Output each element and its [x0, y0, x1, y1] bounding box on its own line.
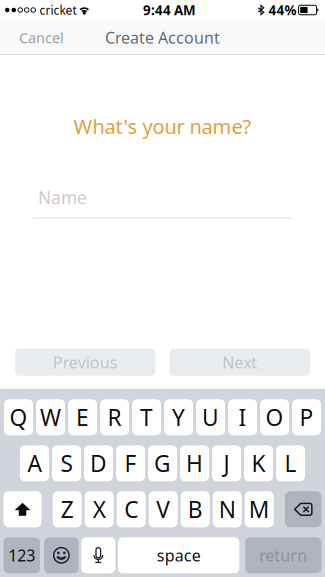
staticText: space — [157, 545, 201, 566]
staticText: A — [27, 448, 41, 478]
button[interactable]: D — [84, 445, 113, 481]
button[interactable]: E — [68, 399, 97, 435]
staticText: M — [249, 494, 270, 524]
staticText: W — [40, 402, 61, 432]
button[interactable]: W — [36, 399, 65, 435]
staticText: cricket — [39, 2, 76, 18]
button[interactable]: T — [132, 399, 161, 435]
button[interactable]: space — [118, 537, 239, 573]
button[interactable]: return — [245, 537, 321, 573]
staticText: 123 — [8, 545, 35, 566]
button[interactable]: Dictate — [81, 537, 115, 573]
button[interactable]: M — [245, 491, 274, 527]
button[interactable]: A — [20, 445, 49, 481]
button[interactable]: V — [149, 491, 178, 527]
staticText: U — [202, 402, 219, 432]
button[interactable]: Shift — [3, 491, 41, 527]
button[interactable]: P — [292, 399, 321, 435]
staticText: T — [140, 402, 153, 432]
button[interactable]: Z — [53, 491, 82, 527]
button[interactable]: X — [85, 491, 114, 527]
staticText: Previous — [53, 352, 118, 373]
button[interactable]: 123 — [3, 537, 40, 573]
staticText: X — [93, 494, 106, 524]
staticText: S — [60, 448, 72, 478]
button[interactable]: L — [276, 445, 305, 481]
button[interactable]: Emoji — [44, 537, 79, 573]
button[interactable]: U — [196, 399, 225, 435]
button[interactable]: K — [244, 445, 273, 481]
staticText: Z — [61, 494, 74, 524]
staticText: J — [223, 448, 229, 478]
button[interactable]: Next — [169, 349, 310, 376]
staticText: Name — [38, 186, 87, 209]
staticText: 44% — [269, 1, 297, 19]
staticText: K — [251, 448, 265, 478]
staticText: H — [186, 448, 203, 478]
staticText: G — [154, 448, 171, 478]
button[interactable]: B — [181, 491, 210, 527]
staticText: E — [76, 402, 89, 432]
staticText: F — [124, 448, 136, 478]
staticText: R — [107, 402, 121, 432]
button[interactable]: J — [212, 445, 241, 481]
button[interactable]: Q — [4, 399, 33, 435]
staticText: Cancel — [19, 28, 64, 47]
button[interactable]: Delete — [285, 491, 321, 527]
staticText: V — [156, 494, 170, 524]
staticText: C — [124, 494, 138, 524]
staticText: Next — [222, 352, 257, 373]
staticText: O — [265, 402, 283, 432]
button[interactable]: S — [52, 445, 81, 481]
button[interactable]: N — [213, 491, 242, 527]
staticText: I — [238, 402, 246, 432]
button[interactable]: H — [180, 445, 209, 481]
button[interactable]: Cancel — [0, 20, 74, 55]
staticText: Create Account — [105, 27, 220, 48]
staticText: N — [219, 494, 236, 524]
staticText: P — [299, 402, 313, 432]
button[interactable]: Previous — [15, 349, 155, 376]
staticText: Q — [9, 402, 27, 432]
button[interactable]: Y — [164, 399, 193, 435]
staticText: Y — [172, 402, 185, 432]
button[interactable]: O — [260, 399, 289, 435]
button[interactable]: C — [117, 491, 146, 527]
button[interactable]: R — [100, 399, 129, 435]
button[interactable]: G — [148, 445, 177, 481]
staticText: B — [188, 494, 203, 524]
staticText: 9:44 AM — [143, 1, 196, 19]
staticText: D — [90, 448, 107, 478]
staticText: What's your name? — [73, 113, 251, 140]
staticText: L — [284, 448, 296, 478]
button[interactable]: F — [116, 445, 145, 481]
button[interactable]: I — [228, 399, 257, 435]
staticText: return — [259, 545, 307, 566]
